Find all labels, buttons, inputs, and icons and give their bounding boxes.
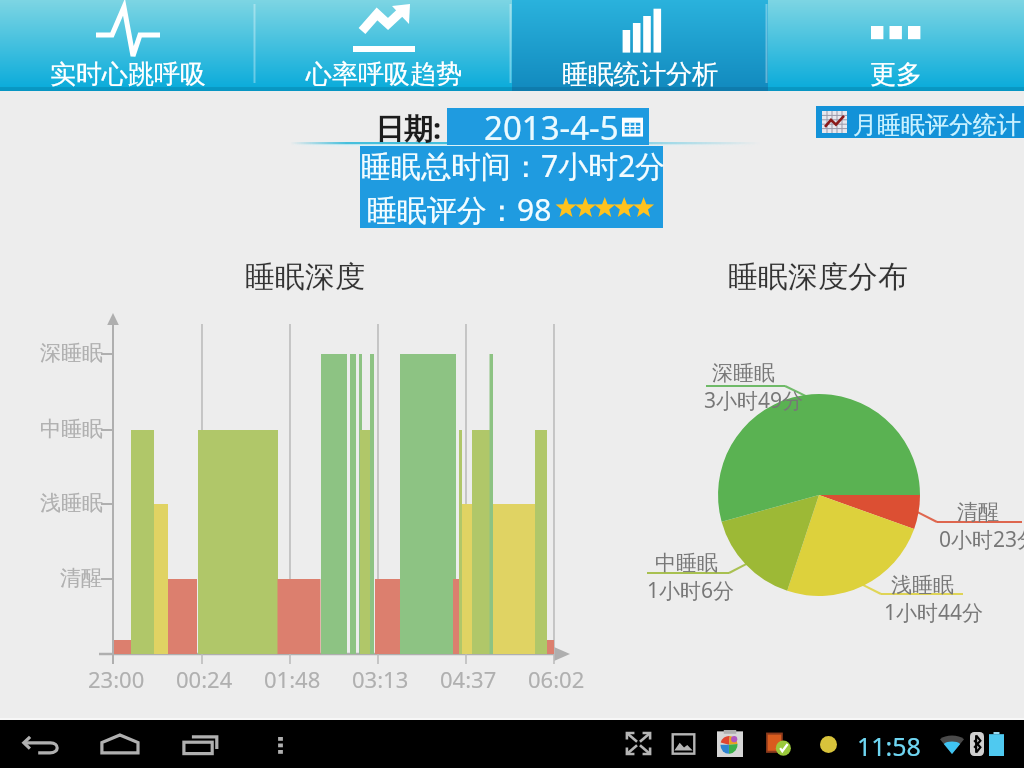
staticText: 更多 <box>870 58 922 91</box>
staticText: 实时心跳呼吸 <box>50 58 206 91</box>
staticText: 11:58 <box>857 729 921 763</box>
staticText: 23:00 <box>88 664 145 694</box>
button[interactable]: 月睡眠评分统计 <box>816 106 1024 138</box>
staticText: 06:02 <box>528 664 585 694</box>
staticText: 浅睡眠 <box>891 572 954 598</box>
staticText: 中睡眠 <box>655 550 718 576</box>
button[interactable]: Home <box>96 726 144 764</box>
staticText: 月睡眠评分统计 <box>853 110 1021 140</box>
button[interactable]: 更多 <box>768 0 1024 91</box>
button[interactable]: Recent apps <box>177 726 225 764</box>
staticText: 清醒 <box>60 565 102 591</box>
button[interactable]: Menu <box>264 726 296 764</box>
staticText: 睡眠深度 <box>245 258 365 296</box>
button[interactable]: 实时心跳呼吸 <box>0 0 256 91</box>
staticText: 2013-4-5 <box>484 105 619 142</box>
staticText: 心率呼吸趋势 <box>306 58 462 91</box>
staticText: 睡眠总时间：7小时2分 <box>361 145 664 186</box>
button[interactable]: 2013-4-5 <box>447 108 649 145</box>
staticText: 中睡眠 <box>40 416 103 442</box>
staticText: 1小时6分 <box>647 576 735 605</box>
staticText: 1小时44分 <box>884 598 984 627</box>
staticText: 深睡眠 <box>712 360 775 386</box>
staticText: 日期: <box>375 108 442 148</box>
staticText: 03:13 <box>352 664 409 694</box>
staticText: 睡眠深度分布 <box>728 258 908 296</box>
staticText: 0小时23分 <box>939 525 1024 554</box>
button[interactable]: 心率呼吸趋势 <box>256 0 512 91</box>
staticText: 清醒 <box>957 499 999 525</box>
staticText: 深睡眠 <box>40 340 103 366</box>
button[interactable]: 睡眠统计分析 <box>512 0 768 91</box>
staticText: 01:48 <box>264 664 321 694</box>
staticText: 00:24 <box>176 664 233 694</box>
button[interactable]: Back <box>16 726 64 764</box>
staticText: 04:37 <box>440 664 497 694</box>
staticText: 睡眠统计分析 <box>562 58 718 91</box>
staticText: 3小时49分 <box>704 386 804 415</box>
staticText: 浅睡眠 <box>40 490 103 516</box>
staticText: 睡眠评分：98 <box>367 189 552 230</box>
